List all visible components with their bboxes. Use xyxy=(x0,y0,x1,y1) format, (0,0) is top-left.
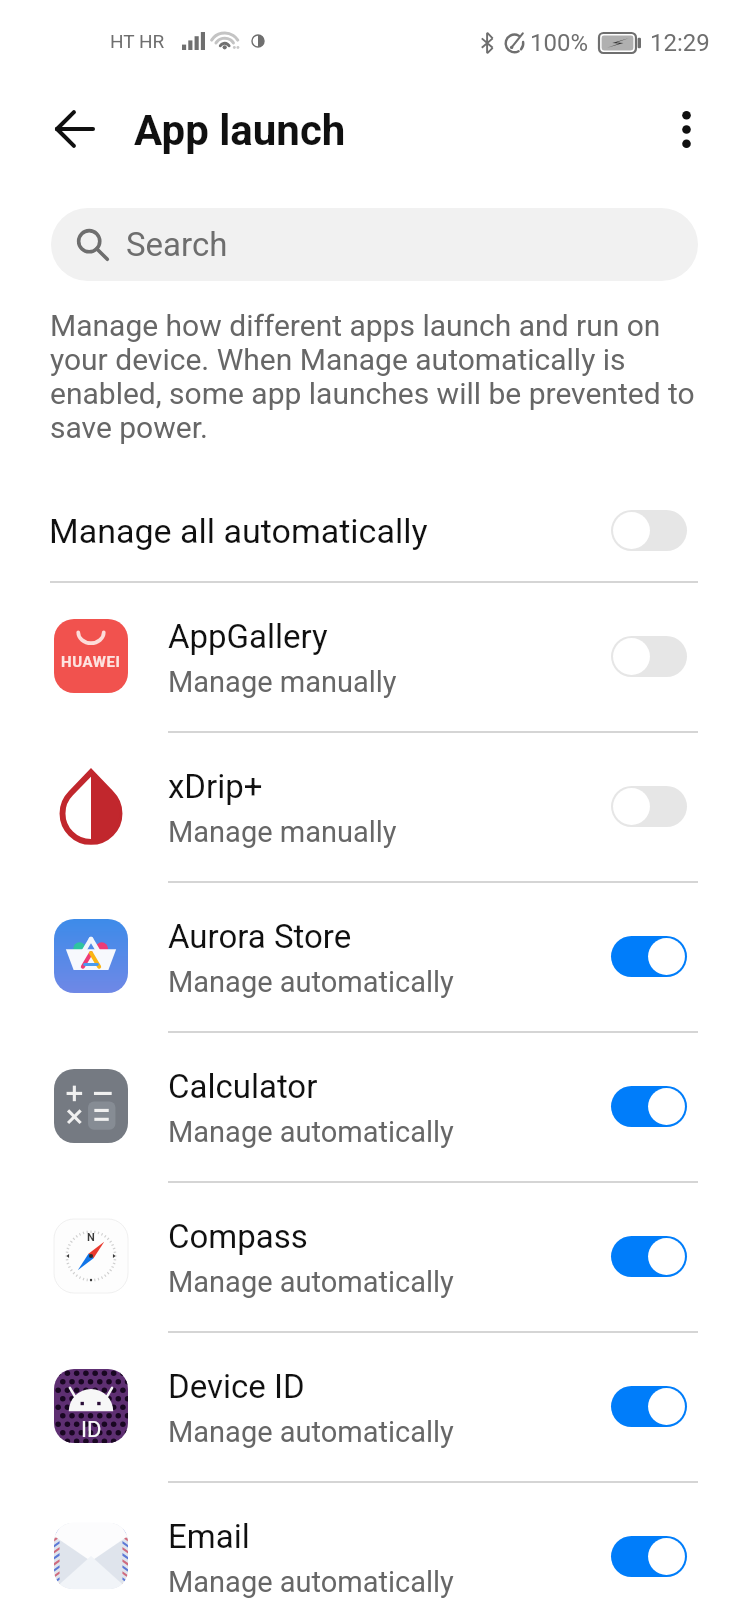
staticText: Manage automatically xyxy=(168,1415,454,1449)
button[interactable]: Enabled xyxy=(611,1086,687,1127)
button[interactable]: Back xyxy=(42,97,106,161)
staticText: ID xyxy=(81,1417,102,1443)
staticText: Email xyxy=(168,1517,250,1556)
staticText: N xyxy=(87,1231,95,1244)
staticText: Device ID xyxy=(168,1367,305,1406)
button[interactable]: Enabled xyxy=(611,936,687,977)
staticText: Compass xyxy=(168,1217,308,1256)
staticText: Manage automatically xyxy=(168,1565,454,1599)
button[interactable]: Aurora Store xyxy=(0,881,748,1031)
staticText: Manage how different apps launch and run… xyxy=(50,309,702,445)
button[interactable]: Enabled xyxy=(611,1536,687,1577)
button[interactable]: Enabled xyxy=(611,1236,687,1277)
button[interactable]: Email xyxy=(0,1481,748,1600)
staticText: 12:29 xyxy=(650,29,710,57)
button[interactable]: More options xyxy=(654,97,718,161)
button[interactable]: N xyxy=(0,1181,748,1331)
staticText: 100% xyxy=(530,29,589,57)
button[interactable]: Disabled xyxy=(611,786,687,827)
staticText: App launch xyxy=(134,106,346,155)
staticText: Manage automatically xyxy=(168,965,454,999)
staticText: Manage all automatically xyxy=(49,511,428,551)
button[interactable]: ID xyxy=(0,1331,748,1481)
button[interactable]: Disabled xyxy=(611,510,687,551)
button[interactable]: Search xyxy=(51,208,698,281)
staticText: Manage manually xyxy=(168,665,397,699)
staticText: Manage manually xyxy=(168,815,397,849)
staticText: AppGallery xyxy=(168,617,328,656)
button[interactable]: Manage all automatically xyxy=(0,477,748,584)
staticText: Manage automatically xyxy=(168,1265,454,1299)
staticText: Search xyxy=(126,225,228,264)
button[interactable]: Disabled xyxy=(611,636,687,677)
button[interactable]: Calculator xyxy=(0,1031,748,1181)
button[interactable]: HUAWEI xyxy=(0,581,748,731)
staticText: HT HR xyxy=(110,30,165,52)
staticText: Manage automatically xyxy=(168,1115,454,1149)
button[interactable]: xDrip+ xyxy=(0,731,748,881)
staticText: Aurora Store xyxy=(168,917,352,956)
staticText: xDrip+ xyxy=(168,767,263,806)
staticText: Calculator xyxy=(168,1067,318,1106)
button[interactable]: Enabled xyxy=(611,1386,687,1427)
staticText: HUAWEI xyxy=(61,653,121,671)
